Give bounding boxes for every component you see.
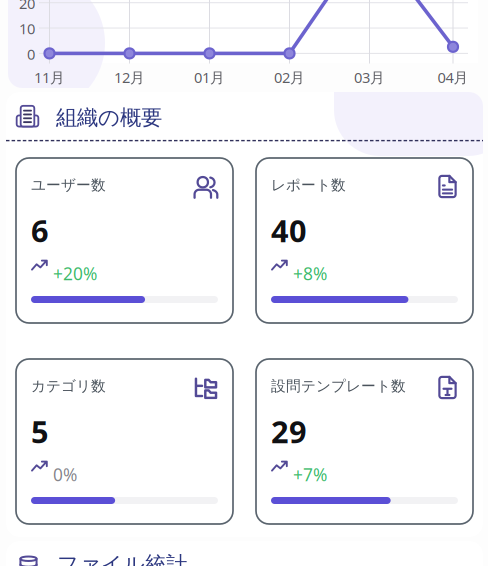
button[interactable]: ファイル統計 <box>6 541 483 566</box>
staticText: 組織の概要 <box>56 104 162 131</box>
staticText: カテゴリ数 <box>31 377 106 395</box>
staticText: 40 <box>271 210 307 251</box>
staticText: レポート数 <box>271 176 346 194</box>
staticText: 5 <box>31 411 49 452</box>
staticText: ファイル統計 <box>57 551 187 566</box>
staticText: 6 <box>31 210 49 251</box>
staticText: +7% <box>293 463 327 486</box>
button[interactable]: 設問テンプレート数 <box>256 359 473 524</box>
staticText: 20 <box>19 0 35 13</box>
button[interactable]: 組織の概要 <box>6 92 483 140</box>
staticText: 12月 <box>114 67 145 87</box>
staticText: 29 <box>271 411 307 452</box>
staticText: 0 <box>27 44 35 64</box>
staticText: 0% <box>53 463 77 486</box>
staticText: 04月 <box>437 67 468 87</box>
button[interactable]: レポート数 <box>256 158 473 323</box>
staticText: 01月 <box>194 67 225 87</box>
staticText: ユーザー数 <box>31 176 106 194</box>
staticText: 10 <box>19 19 35 38</box>
staticText: +8% <box>293 262 327 285</box>
staticText: 設問テンプレート数 <box>271 377 406 395</box>
staticText: +20% <box>53 262 97 285</box>
staticText: 02月 <box>274 67 305 87</box>
button[interactable]: ユーザー数 <box>16 158 233 323</box>
button[interactable]: カテゴリ数 <box>16 359 233 524</box>
staticText: 11月 <box>34 67 65 87</box>
staticText: 03月 <box>354 67 385 87</box>
